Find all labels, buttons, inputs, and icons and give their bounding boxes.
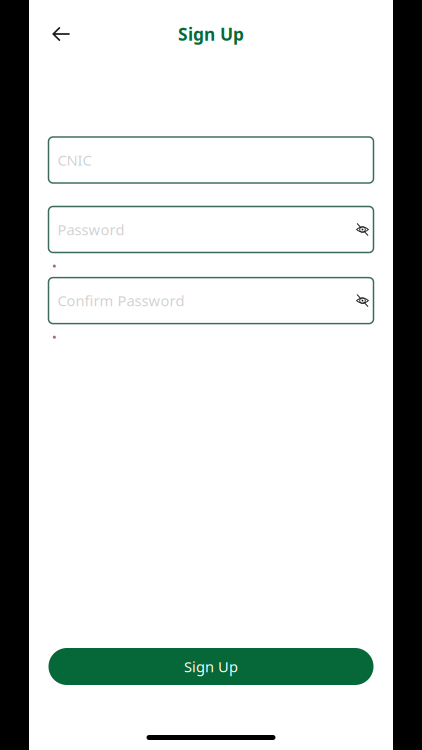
button[interactable]: Show Password: [352, 214, 373, 244]
staticText: Sign Up: [184, 657, 238, 676]
button[interactable]: Show Confirm Password: [352, 286, 373, 316]
staticText: Confirm Password: [57, 291, 184, 310]
staticText: CNIC: [57, 150, 91, 170]
button[interactable]: Confirm Password: [48, 278, 373, 324]
button[interactable]: Back: [44, 19, 78, 49]
button[interactable]: Password: [48, 206, 373, 252]
staticText: Password: [57, 220, 124, 239]
staticText: Sign Up: [178, 22, 244, 45]
button[interactable]: CNIC: [48, 137, 373, 183]
button[interactable]: Sign Up: [48, 648, 373, 685]
